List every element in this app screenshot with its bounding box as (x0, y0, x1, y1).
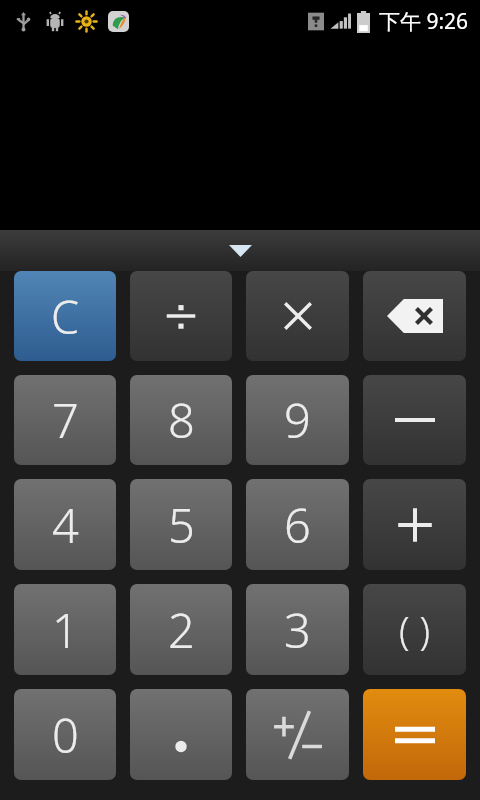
staticText: 6 (284, 493, 311, 557)
button[interactable]: Equals (363, 689, 466, 780)
button[interactable]: Multiply (246, 271, 349, 361)
staticText: 1 (52, 598, 79, 662)
button[interactable]: 7 (14, 375, 116, 465)
staticText: C (51, 286, 80, 347)
button[interactable]: Minus (363, 375, 466, 465)
button[interactable]: Parentheses (363, 584, 466, 675)
button[interactable]: 0 (14, 689, 116, 780)
button[interactable]: Divide (130, 271, 232, 361)
staticText: ( ) (399, 604, 430, 656)
button[interactable]: 9 (246, 375, 349, 465)
button[interactable]: Clear (14, 271, 116, 361)
staticText: 3 (284, 598, 311, 662)
staticText: 9 (284, 388, 311, 452)
staticText: 7 (52, 388, 79, 452)
button[interactable]: 8 (130, 375, 232, 465)
staticText: 2 (168, 598, 195, 662)
staticText: 4 (52, 493, 79, 557)
staticText: 0 (52, 703, 79, 767)
button[interactable]: 1 (14, 584, 116, 675)
button[interactable]: Plus minus (246, 689, 349, 780)
staticText: 下午 9:26 (379, 7, 469, 36)
button[interactable]: Plus (363, 479, 466, 570)
button[interactable]: 3 (246, 584, 349, 675)
button[interactable]: Decimal point (130, 689, 232, 780)
staticText: 5 (168, 493, 195, 557)
button[interactable]: 2 (130, 584, 232, 675)
staticText: 8 (168, 388, 195, 452)
button[interactable]: 5 (130, 479, 232, 570)
button[interactable]: Backspace (363, 271, 466, 361)
button[interactable]: 4 (14, 479, 116, 570)
button[interactable]: 6 (246, 479, 349, 570)
